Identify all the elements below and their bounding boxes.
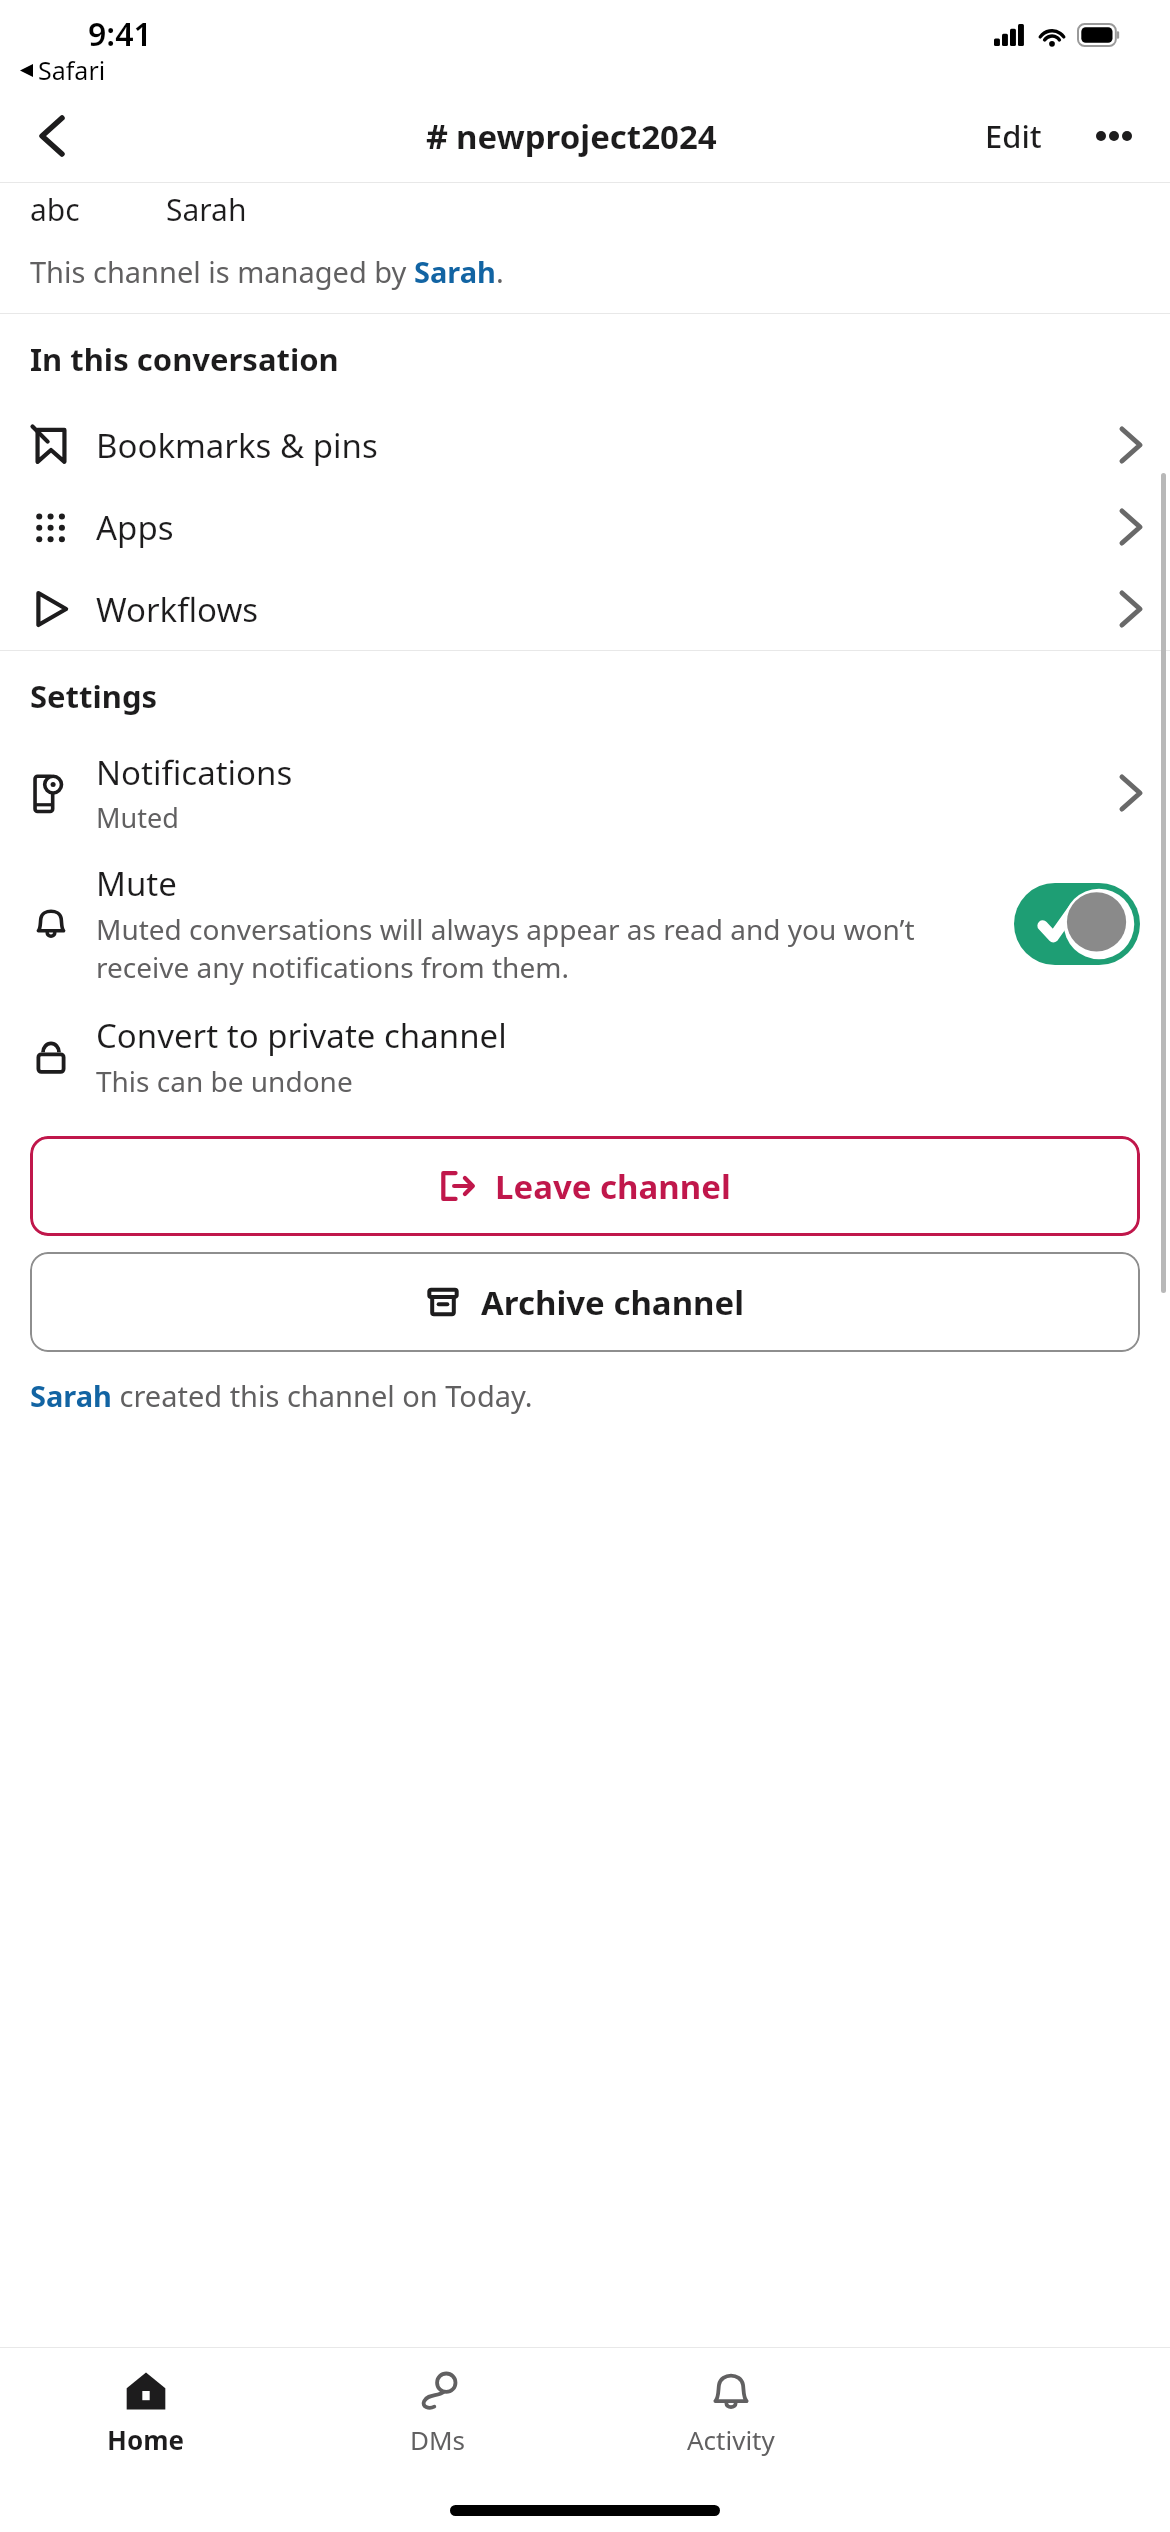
button[interactable]: Archive channel: [30, 1252, 1140, 1352]
staticText: DMs: [410, 2422, 466, 2457]
staticText: Safari: [38, 53, 106, 87]
button[interactable]: Apps: [0, 486, 1170, 568]
button[interactable]: Leave channel: [30, 1136, 1140, 1236]
button[interactable]: Edit: [985, 115, 1042, 157]
staticText: 9:41: [88, 12, 152, 56]
button[interactable]: Activity: [584, 2348, 877, 2476]
button[interactable]: Home: [0, 2348, 292, 2476]
button[interactable]: Mute toggle: [1014, 883, 1140, 965]
staticText: #: [426, 113, 448, 159]
staticText: Sarah: [166, 189, 247, 230]
staticText: Notifications: [96, 750, 293, 795]
staticText: This can be undone: [96, 1062, 353, 1100]
button[interactable]: Workflows: [0, 568, 1170, 650]
staticText: In this conversation: [30, 338, 339, 380]
button[interactable]: Mute: [0, 845, 1170, 1002]
staticText: Muted conversations will always appear a…: [96, 910, 996, 986]
button[interactable]: Convert to private channel: [0, 1002, 1170, 1110]
button[interactable]: Back: [22, 106, 82, 166]
staticText: Mute: [96, 861, 177, 906]
staticText: Convert to private channel: [96, 1013, 507, 1058]
staticText: newproject2024: [456, 114, 717, 159]
staticText: Sarah created this channel on Today.: [30, 1376, 533, 1415]
staticText: Apps: [96, 505, 174, 550]
button[interactable]: Bookmarks & pins: [0, 404, 1170, 486]
staticText: Workflows: [96, 587, 259, 632]
button[interactable]: DMs: [292, 2348, 584, 2476]
staticText: Archive channel: [481, 1280, 745, 1325]
staticText: Activity: [687, 2422, 775, 2457]
staticText: Muted: [96, 799, 179, 836]
staticText: Home: [107, 2422, 185, 2457]
staticText: Leave channel: [495, 1164, 731, 1209]
staticText: Bookmarks & pins: [96, 423, 378, 468]
button[interactable]: More options: [1084, 106, 1144, 166]
staticText: abc: [30, 189, 80, 230]
button[interactable]: Notifications: [0, 741, 1170, 845]
staticText: This channel is managed by Sarah.: [30, 252, 504, 291]
staticText: Settings: [30, 675, 158, 717]
